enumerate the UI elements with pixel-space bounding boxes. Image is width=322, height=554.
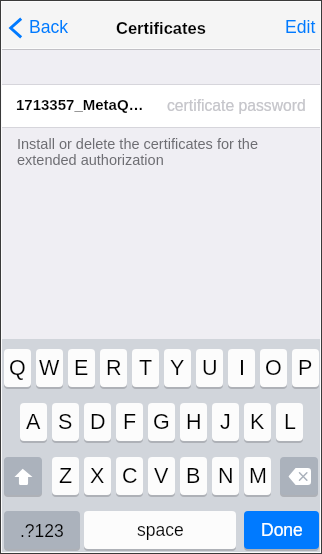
staticText: H bbox=[186, 410, 202, 434]
button[interactable]: Backspace bbox=[280, 457, 318, 495]
button[interactable]: E bbox=[68, 349, 95, 387]
staticText: B bbox=[186, 464, 201, 488]
staticText: Done bbox=[261, 520, 303, 540]
staticText: D bbox=[90, 410, 106, 434]
staticText: M bbox=[249, 464, 267, 488]
staticText: K bbox=[250, 410, 265, 434]
staticText: I bbox=[239, 356, 245, 380]
staticText: X bbox=[90, 464, 105, 488]
staticText: Install or delete the certificates for t… bbox=[17, 136, 273, 168]
button[interactable]: space bbox=[84, 511, 236, 549]
button[interactable]: K bbox=[244, 403, 271, 441]
staticText: G bbox=[153, 410, 170, 434]
button[interactable]: O bbox=[260, 349, 287, 387]
button[interactable]: Shift bbox=[4, 457, 42, 495]
staticText: Back bbox=[29, 17, 69, 37]
staticText: W bbox=[39, 356, 60, 380]
button[interactable]: I bbox=[228, 349, 255, 387]
button[interactable]: X bbox=[84, 457, 111, 495]
staticText: F bbox=[123, 410, 137, 434]
staticText: 1713357_MetaQ… bbox=[16, 96, 144, 113]
staticText: V bbox=[154, 464, 169, 488]
button[interactable]: V bbox=[148, 457, 175, 495]
button[interactable]: C bbox=[116, 457, 143, 495]
button[interactable]: U bbox=[196, 349, 223, 387]
button[interactable]: P bbox=[292, 349, 319, 387]
button[interactable]: Y bbox=[164, 349, 191, 387]
staticText: S bbox=[58, 410, 73, 434]
button[interactable]: G bbox=[148, 403, 175, 441]
button[interactable]: B bbox=[180, 457, 207, 495]
staticText: A bbox=[26, 410, 41, 434]
staticText: certificate password bbox=[167, 97, 306, 115]
staticText: Q bbox=[9, 356, 26, 380]
staticText: space bbox=[137, 520, 184, 540]
button[interactable]: Done bbox=[244, 511, 319, 549]
button[interactable]: N bbox=[212, 457, 239, 495]
button[interactable]: .?123 bbox=[4, 511, 80, 549]
button[interactable]: D bbox=[84, 403, 111, 441]
staticText: N bbox=[218, 464, 234, 488]
staticText: L bbox=[284, 410, 296, 434]
button[interactable]: R bbox=[100, 349, 127, 387]
button[interactable]: M bbox=[244, 457, 271, 495]
staticText: E bbox=[74, 356, 89, 380]
staticText: U bbox=[202, 356, 218, 380]
button[interactable]: S bbox=[52, 403, 79, 441]
staticText: J bbox=[220, 410, 231, 434]
button[interactable]: Edit bbox=[285, 9, 316, 45]
button[interactable]: 1713357_MetaQ… bbox=[2, 85, 320, 127]
staticText: O bbox=[265, 356, 282, 380]
staticText: P bbox=[298, 356, 313, 380]
staticText: .?123 bbox=[20, 521, 64, 541]
staticText: C bbox=[122, 464, 138, 488]
button[interactable]: L bbox=[276, 403, 303, 441]
button[interactable]: Z bbox=[52, 457, 79, 495]
staticText: Edit bbox=[285, 17, 316, 37]
button[interactable]: J bbox=[212, 403, 239, 441]
button[interactable]: Back bbox=[9, 9, 69, 45]
staticText: Z bbox=[59, 464, 73, 488]
button[interactable]: Q bbox=[4, 349, 31, 387]
staticText: Y bbox=[170, 356, 185, 380]
staticText: Certificates bbox=[116, 19, 206, 37]
button[interactable]: T bbox=[132, 349, 159, 387]
staticText: T bbox=[139, 356, 153, 380]
button[interactable]: W bbox=[36, 349, 63, 387]
button[interactable]: F bbox=[116, 403, 143, 441]
button[interactable]: H bbox=[180, 403, 207, 441]
staticText: R bbox=[106, 356, 122, 380]
button[interactable]: A bbox=[20, 403, 47, 441]
